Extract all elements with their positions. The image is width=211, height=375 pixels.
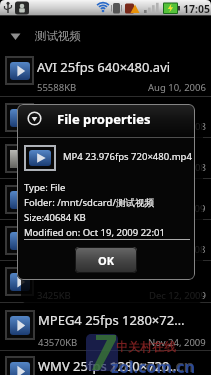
staticText: 3425KB (37, 289, 71, 302)
button[interactable] (5, 310, 35, 340)
staticText: 测试视频 (35, 29, 81, 43)
staticText: …09 (187, 202, 206, 215)
staticText: 55588KB (37, 81, 77, 94)
button[interactable] (5, 144, 34, 173)
staticText: Nov 24, 2009 (148, 336, 206, 349)
staticText: OK (98, 253, 115, 268)
button[interactable] (5, 185, 34, 214)
staticText: Size:40684 KB (24, 211, 86, 224)
button[interactable] (0, 48, 211, 97)
staticText: 17:05 (183, 2, 210, 16)
button[interactable] (0, 302, 211, 350)
staticText: 中关村在线 (116, 339, 176, 354)
staticText: Type: File (24, 181, 66, 194)
staticText: Modified on: Oct 19, 2009 22:01 (24, 226, 165, 239)
button[interactable] (5, 267, 34, 296)
staticText: …08 (187, 243, 206, 256)
button[interactable] (5, 103, 34, 132)
button[interactable] (5, 356, 35, 375)
button[interactable] (5, 56, 34, 85)
button[interactable] (24, 145, 56, 171)
staticText: Folder: /mnt/sdcard/测试视频 (24, 196, 154, 209)
button[interactable]: OK (75, 247, 137, 273)
staticText: Dec 12, 2009 (149, 289, 206, 302)
staticText: MP4 23.976fps 720×480.mp4 (63, 150, 192, 163)
staticText: File properties (57, 110, 151, 128)
button[interactable] (0, 28, 211, 46)
staticText: 43570KB (38, 336, 78, 349)
button[interactable] (5, 226, 34, 255)
staticText: 08 (195, 120, 206, 133)
staticText: MPEG4 25fps 1280×72… (38, 311, 185, 329)
staticText: 08 (195, 161, 206, 174)
staticText: WMV 25fps 1280×720… (38, 357, 180, 375)
staticText: AVI 25fps 640×480.avi (37, 58, 171, 76)
button[interactable] (0, 350, 211, 375)
staticText: zol.com.cn (111, 356, 196, 375)
staticText: zol.com.cn (110, 355, 195, 375)
staticText: Aug 10, 2006 (148, 81, 206, 94)
